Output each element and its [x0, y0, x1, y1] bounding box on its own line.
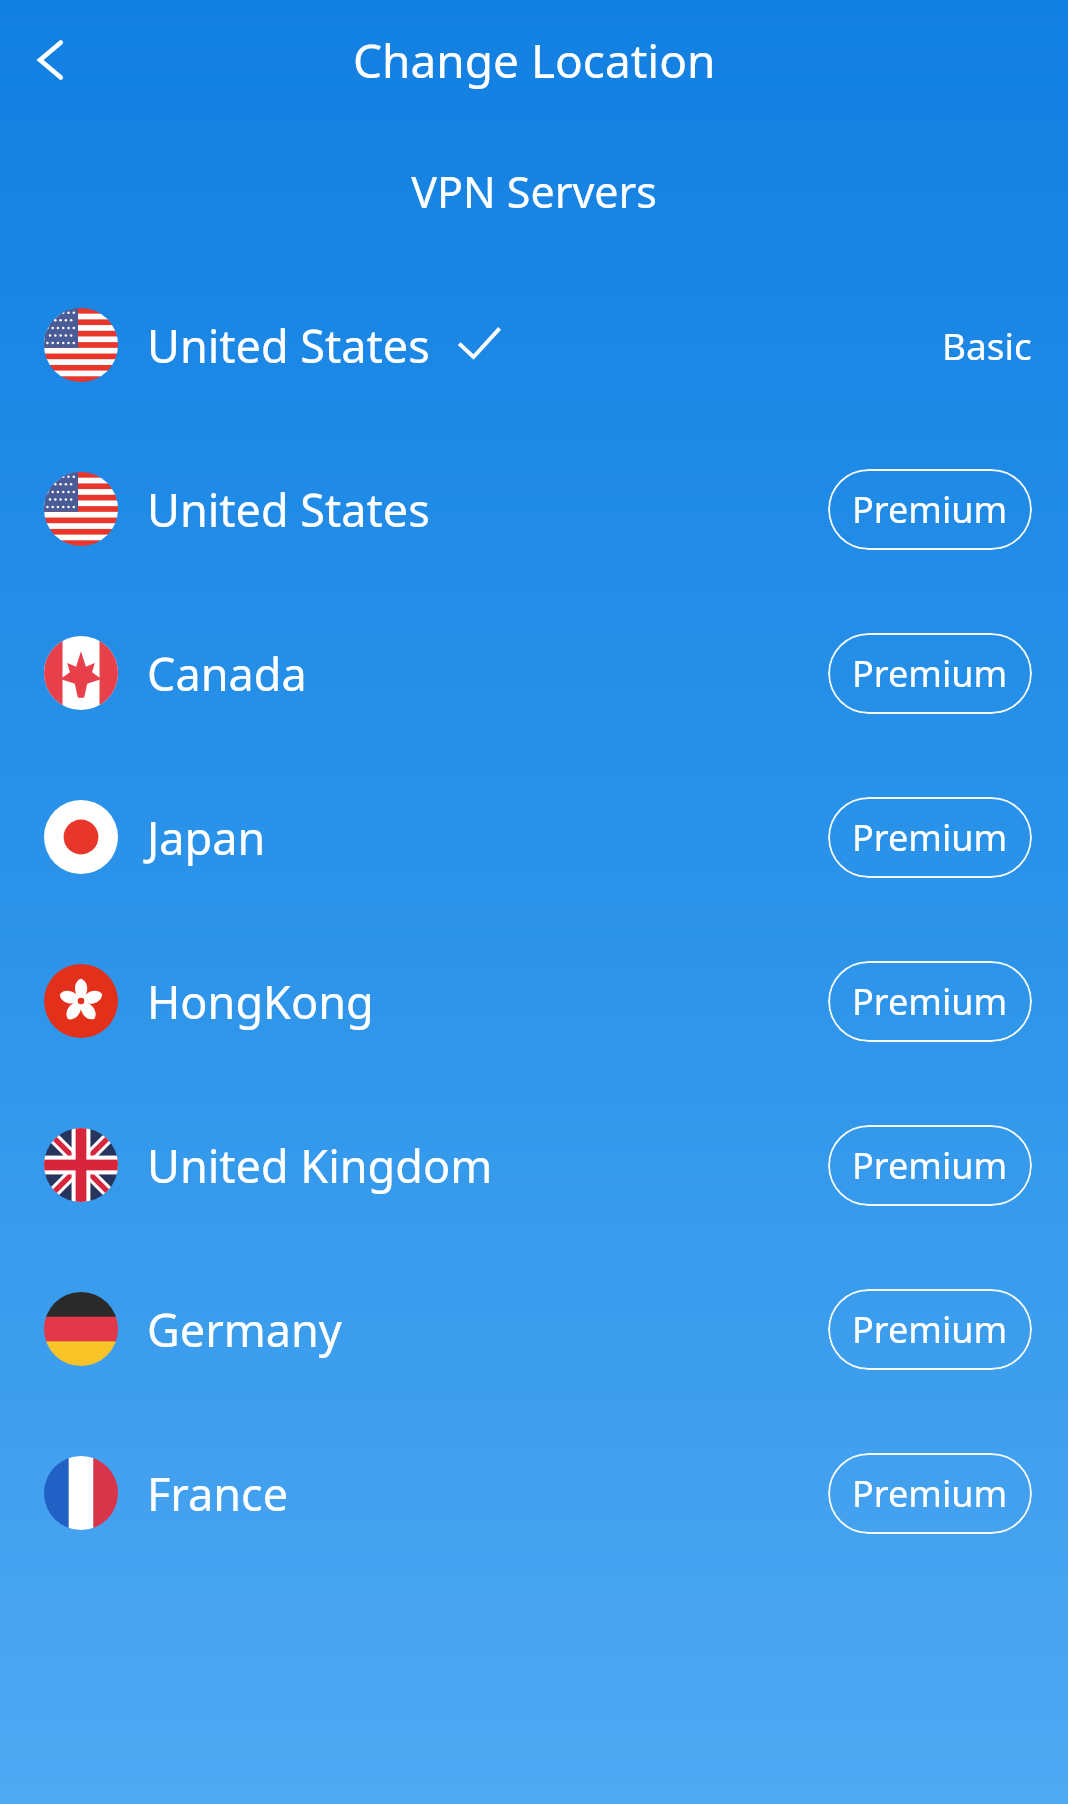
staticText: United States [147, 479, 430, 540]
staticText: Premium [852, 649, 1008, 698]
staticText: Japan [147, 807, 266, 868]
staticText: Basic [942, 320, 1032, 370]
staticText: Premium [852, 485, 1008, 534]
staticText: Premium [852, 977, 1008, 1026]
staticText: VPN Servers [411, 162, 657, 221]
button[interactable]: Germany [0, 1247, 1068, 1411]
staticText: Change Location [353, 29, 716, 92]
staticText: Premium [852, 813, 1008, 862]
staticText: Canada [147, 643, 307, 704]
button[interactable]: Premium [828, 469, 1032, 550]
button[interactable]: Premium [828, 1453, 1032, 1534]
staticText: United Kingdom [147, 1135, 493, 1196]
button[interactable]: Back [14, 22, 90, 98]
button[interactable]: Japan [0, 755, 1068, 919]
button[interactable]: Premium [828, 1289, 1032, 1370]
button[interactable]: Premium [828, 1125, 1032, 1206]
staticText: HongKong [147, 971, 374, 1032]
staticText: Premium [852, 1469, 1008, 1518]
button[interactable]: United States [0, 427, 1068, 591]
button[interactable]: United States [0, 263, 1068, 427]
button[interactable]: Premium [828, 961, 1032, 1042]
button[interactable]: Canada [0, 591, 1068, 755]
button[interactable]: HongKong [0, 919, 1068, 1083]
button[interactable]: Premium [828, 797, 1032, 878]
button[interactable]: United Kingdom [0, 1083, 1068, 1247]
button[interactable]: France [0, 1411, 1068, 1575]
staticText: Germany [147, 1299, 342, 1360]
staticText: Premium [852, 1141, 1008, 1190]
staticText: United States [147, 315, 430, 376]
button[interactable]: Premium [828, 633, 1032, 714]
staticText: Premium [852, 1305, 1008, 1354]
staticText: France [147, 1463, 289, 1524]
